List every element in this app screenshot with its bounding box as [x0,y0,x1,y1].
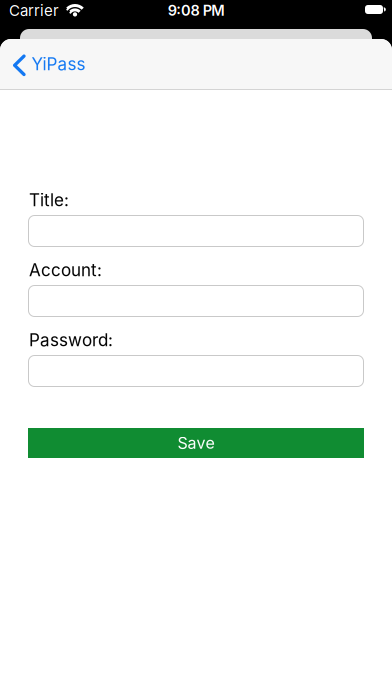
button[interactable]: Back to YiPass [0,39,120,90]
staticText: 9:08 PM [168,2,224,19]
staticText: Title: [29,190,69,210]
staticText: Save [177,434,214,452]
staticText: Password: [29,330,113,350]
staticText: Account: [29,260,102,280]
button[interactable]: Save [28,428,364,458]
staticText: Carrier [9,2,59,19]
staticText: YiPass [31,54,85,74]
